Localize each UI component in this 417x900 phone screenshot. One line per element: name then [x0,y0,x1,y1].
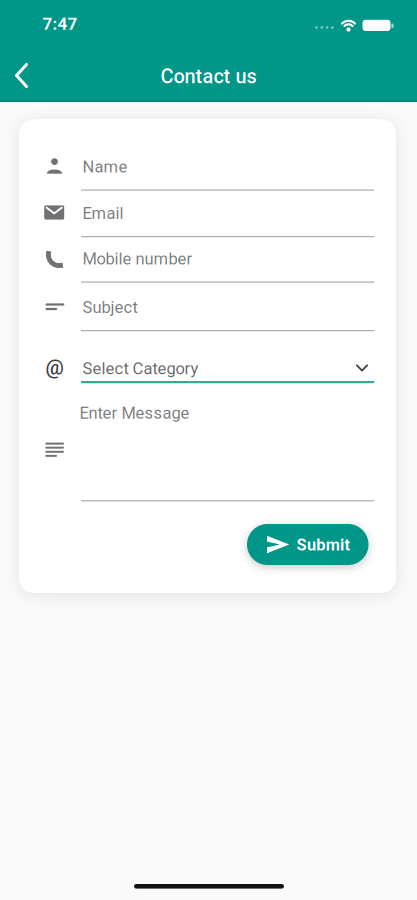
staticText: Name [82,157,127,177]
staticText: Email [82,204,123,223]
staticText: Subject [82,298,137,317]
staticText: Submit [296,535,350,554]
staticText: Enter Message [79,403,189,423]
button[interactable]: Mobile number [40,236,375,283]
button[interactable]: Name [40,144,375,191]
staticText: Contact us [160,65,256,88]
button[interactable]: Enter Message [40,398,375,503]
button[interactable]: @ [40,345,375,385]
button[interactable]: Email [40,190,375,237]
staticText: Select Category [82,359,198,378]
button[interactable]: Back [2,53,46,97]
staticText: Mobile number [82,249,192,269]
staticText: @ [45,355,63,379]
button[interactable]: Subject [40,284,375,331]
staticText: 7:47 [42,14,77,34]
button[interactable]: Submit [247,524,368,565]
